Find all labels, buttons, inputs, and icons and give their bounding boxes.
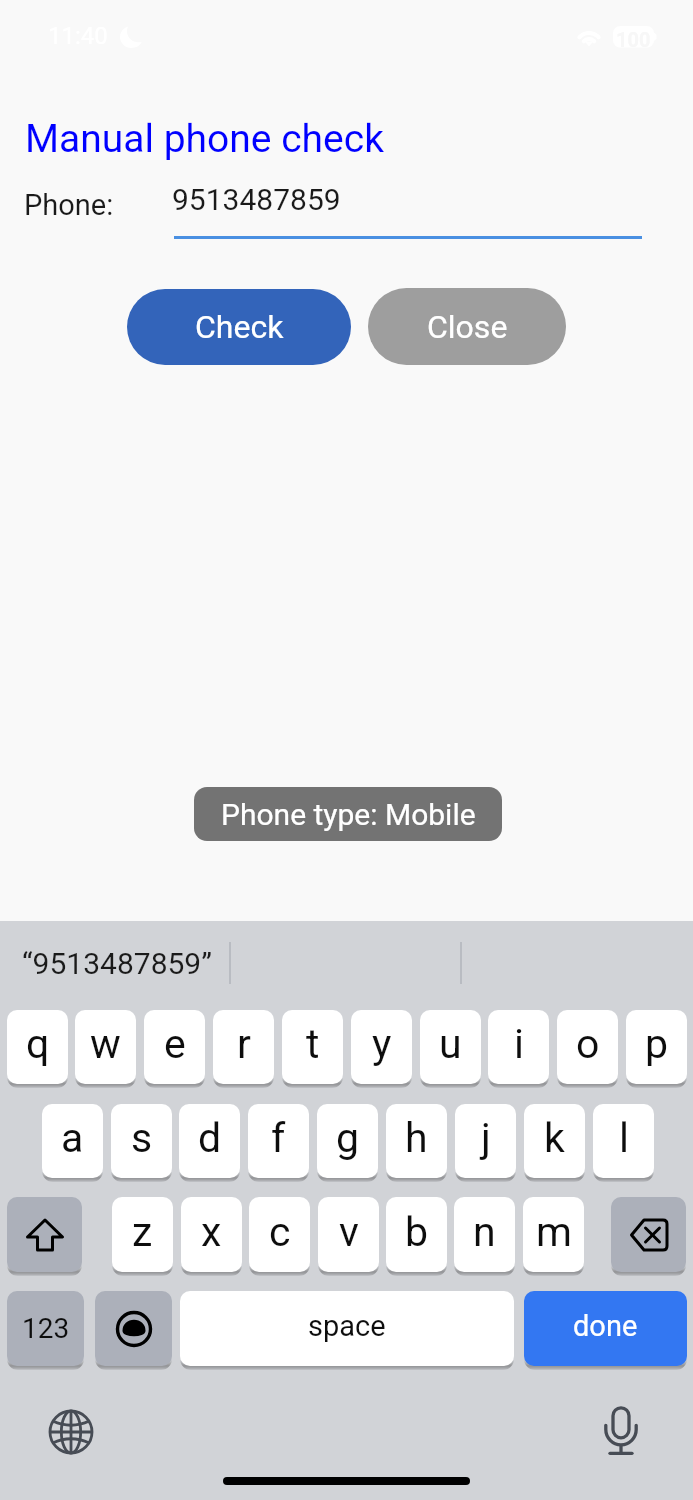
- staticText: q: [26, 1020, 50, 1068]
- button[interactable]: y: [351, 1010, 412, 1084]
- button[interactable]: g: [317, 1104, 378, 1178]
- staticText: z: [132, 1208, 153, 1256]
- button[interactable]: Backspace: [611, 1197, 686, 1272]
- button[interactable]: i: [488, 1010, 549, 1084]
- button[interactable]: k: [524, 1104, 585, 1178]
- button[interactable]: l: [593, 1104, 654, 1178]
- staticText: e: [164, 1020, 186, 1068]
- staticText: p: [645, 1020, 669, 1068]
- staticText: s: [131, 1114, 153, 1162]
- staticText: done: [573, 1309, 638, 1343]
- staticText: space: [308, 1309, 386, 1343]
- staticText: t: [306, 1020, 320, 1068]
- staticText: Close: [427, 308, 508, 346]
- staticText: k: [544, 1114, 565, 1162]
- button[interactable]: v: [318, 1197, 379, 1272]
- button[interactable]: b: [386, 1197, 447, 1272]
- staticText: g: [336, 1114, 360, 1162]
- button[interactable]: x: [181, 1197, 242, 1272]
- staticText: m: [536, 1208, 572, 1256]
- staticText: u: [439, 1020, 462, 1068]
- staticText: x: [201, 1208, 222, 1256]
- button[interactable]: t: [282, 1010, 343, 1084]
- staticText: d: [198, 1114, 222, 1162]
- staticText: y: [372, 1020, 392, 1068]
- button[interactable]: Voice input: [590, 1396, 652, 1458]
- staticText: Phone:: [24, 188, 114, 222]
- button[interactable]: 123: [7, 1291, 84, 1366]
- button[interactable]: w: [75, 1010, 136, 1084]
- button[interactable]: u: [420, 1010, 481, 1084]
- staticText: v: [339, 1208, 359, 1256]
- staticText: n: [473, 1208, 496, 1256]
- button[interactable]: Change keyboard language: [40, 1401, 102, 1463]
- button[interactable]: Shift: [7, 1197, 82, 1272]
- button[interactable]: p: [626, 1010, 687, 1084]
- button[interactable]: d: [179, 1104, 240, 1178]
- staticText: i: [514, 1020, 524, 1068]
- button[interactable]: e: [144, 1010, 205, 1084]
- button[interactable]: space: [180, 1291, 514, 1366]
- button[interactable]: h: [386, 1104, 447, 1178]
- staticText: b: [405, 1208, 429, 1256]
- staticText: 123: [22, 1312, 70, 1345]
- button[interactable]: n: [454, 1197, 515, 1272]
- staticText: r: [237, 1020, 251, 1068]
- button[interactable]: r: [213, 1010, 274, 1084]
- staticText: w: [90, 1020, 121, 1068]
- button[interactable]: Check: [127, 289, 351, 365]
- staticText: Manual phone check: [25, 116, 384, 162]
- button[interactable]: a: [42, 1104, 103, 1178]
- staticText: Phone type: Mobile: [221, 797, 476, 832]
- staticText: Check: [195, 308, 284, 346]
- staticText: 100: [616, 28, 651, 51]
- button[interactable]: m: [523, 1197, 584, 1272]
- button[interactable]: j: [455, 1104, 516, 1178]
- button[interactable]: o: [557, 1010, 618, 1084]
- staticText: “9513487859”: [22, 946, 212, 981]
- staticText: o: [576, 1020, 600, 1068]
- button[interactable]: done: [524, 1291, 687, 1366]
- button[interactable]: s: [111, 1104, 172, 1178]
- button[interactable]: c: [249, 1197, 310, 1272]
- staticText: f: [271, 1114, 286, 1162]
- staticText: h: [405, 1114, 428, 1162]
- button[interactable]: Close: [368, 288, 566, 365]
- staticText: c: [269, 1208, 291, 1256]
- button[interactable]: f: [248, 1104, 309, 1178]
- staticText: a: [61, 1114, 84, 1162]
- staticText: j: [481, 1114, 491, 1162]
- button[interactable]: q: [7, 1010, 68, 1084]
- button[interactable]: z: [112, 1197, 173, 1272]
- staticText: l: [619, 1114, 629, 1162]
- staticText: 9513487859: [172, 182, 341, 217]
- button[interactable]: Emoji: [95, 1291, 172, 1366]
